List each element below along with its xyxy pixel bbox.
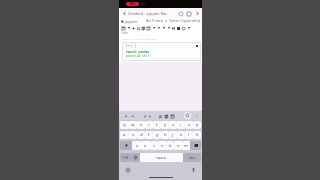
button[interactable]: Forward: [193, 9, 201, 18]
staticText: r: [148, 122, 150, 128]
button[interactable]: Redo: [129, 113, 135, 119]
button[interactable]: Back: [121, 9, 128, 18]
staticText: m: [184, 143, 188, 149]
button[interactable]: v: [158, 141, 166, 150]
button[interactable]: t: [153, 121, 161, 129]
button[interactable]: k: [177, 131, 185, 139]
staticText: REC: [130, 2, 136, 6]
button[interactable]: Paste: [146, 25, 151, 31]
staticText: f: [148, 132, 150, 138]
button[interactable]: e: [137, 121, 145, 129]
button[interactable]: Cell type: [186, 25, 191, 31]
staticText: y: [164, 122, 167, 128]
staticText: k: [180, 132, 183, 138]
button[interactable]: Reload: [177, 9, 185, 18]
button[interactable]: c: [150, 141, 158, 150]
button[interactable]: g: [153, 131, 161, 139]
button[interactable]: a: [120, 131, 129, 139]
button[interactable]: Backspace: [190, 141, 201, 150]
staticText: v: [161, 143, 164, 149]
staticText: Python 3 (ipykernel): [169, 19, 197, 23]
staticText: d: [140, 132, 143, 138]
button[interactable]: Move up: [151, 25, 156, 31]
button[interactable]: n: [174, 141, 182, 150]
staticText: In [ ]:: [126, 44, 138, 48]
button[interactable]: f: [145, 131, 153, 139]
button[interactable]: Cut: [136, 25, 141, 31]
staticText: b: [169, 143, 172, 149]
button[interactable]: q: [120, 121, 129, 129]
button[interactable]: ?123: [120, 153, 131, 162]
button[interactable]: Copy: [141, 25, 146, 31]
button[interactable]: Interrupt: [176, 25, 181, 31]
button[interactable]: Move down: [156, 25, 161, 31]
staticText: c: [153, 143, 156, 149]
button[interactable]: u: [169, 121, 177, 129]
button[interactable]: Save: [121, 25, 126, 31]
button[interactable]: w: [129, 121, 137, 129]
staticText: q: [123, 122, 126, 128]
button[interactable]: Run: [171, 25, 176, 31]
staticText: n: [177, 143, 180, 149]
staticText: ?123: [122, 156, 129, 160]
button[interactable]: y: [161, 121, 169, 129]
button[interactable]: Copy: [163, 113, 169, 119]
button[interactable]: b: [166, 141, 174, 150]
staticText: ⌄: [141, 32, 144, 35]
button[interactable]: s: [129, 131, 137, 139]
button[interactable]: Move left: [141, 113, 147, 119]
button[interactable]: l: [185, 131, 193, 139]
staticText: Not Trusted: [146, 19, 163, 23]
button[interactable]: Tabs: [185, 9, 193, 18]
staticText: u: [172, 122, 175, 128]
button[interactable]: Emoji: [124, 166, 131, 173]
button[interactable]: Save options: [126, 25, 131, 31]
button[interactable]: More options: [194, 113, 200, 119]
button[interactable]: espacio: [140, 153, 183, 162]
staticText: Untitled - Jupyter No...: [128, 11, 170, 16]
button[interactable]: ñ: [193, 131, 201, 139]
staticText: import pandas: [126, 50, 150, 54]
button[interactable]: o: [185, 121, 193, 129]
button[interactable]: h: [161, 131, 169, 139]
button[interactable]: Insert: [166, 25, 171, 31]
button[interactable]: Move right: [147, 113, 153, 119]
staticText: e: [140, 122, 143, 128]
staticText: print(pd.sh()): [126, 54, 152, 58]
button[interactable]: Shift: [120, 141, 132, 150]
staticText: j: [172, 132, 174, 138]
staticText: g: [156, 132, 159, 138]
staticText: l: [188, 132, 190, 138]
button[interactable]: intro: [183, 153, 201, 162]
button[interactable]: Add cell: [131, 25, 136, 31]
button[interactable]: Cut: [157, 113, 163, 119]
button[interactable]: r: [145, 121, 153, 129]
button[interactable]: Restart: [181, 25, 186, 31]
staticText: i: [180, 122, 182, 128]
button[interactable]: i: [177, 121, 185, 129]
button[interactable]: m: [182, 141, 190, 150]
staticText: jupyter: [125, 19, 138, 24]
staticText: ⌄: [148, 32, 151, 35]
button[interactable]: z: [132, 141, 141, 150]
button[interactable]: Paste: [169, 113, 175, 119]
staticText: z: [136, 143, 138, 149]
button[interactable]: Emoji: [131, 153, 140, 162]
button[interactable]: x: [141, 141, 150, 150]
staticText: w: [131, 122, 135, 128]
staticText: t: [156, 122, 158, 128]
button[interactable]: Voice input: [190, 166, 197, 173]
button[interactable]: j: [169, 131, 177, 139]
button[interactable]: Undo: [123, 113, 129, 119]
staticText: h: [164, 132, 167, 138]
staticText: p: [196, 122, 199, 128]
staticText: espacio: [156, 156, 167, 160]
staticText: Trusted | Python 3 (ipykernel): [122, 37, 157, 40]
button[interactable]: Settings: [184, 112, 191, 119]
staticText: s: [132, 132, 135, 138]
staticText: ñ: [196, 132, 199, 138]
button[interactable]: Move cell: [161, 25, 166, 31]
staticText: x: [144, 143, 147, 149]
button[interactable]: d: [137, 131, 145, 139]
button[interactable]: p: [193, 121, 201, 129]
